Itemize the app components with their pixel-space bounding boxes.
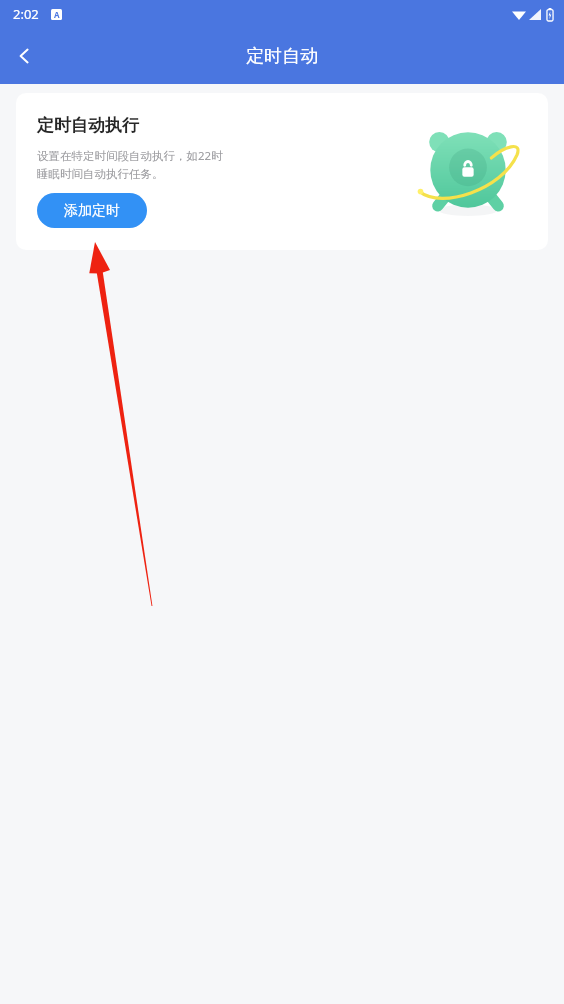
staticText: 睡眠时间自动执行任务。 — [37, 167, 164, 181]
staticText: 2:02 — [13, 5, 39, 23]
button[interactable]: Back — [0, 32, 48, 80]
staticText: 设置在特定时间段自动执行，如22时 — [37, 148, 223, 164]
staticText: 定时自动执行 — [37, 115, 139, 136]
staticText: A — [54, 9, 60, 20]
staticText: 添加定时 — [64, 202, 120, 220]
staticText: 定时自动 — [246, 45, 318, 68]
button[interactable]: 添加定时 — [37, 193, 147, 228]
